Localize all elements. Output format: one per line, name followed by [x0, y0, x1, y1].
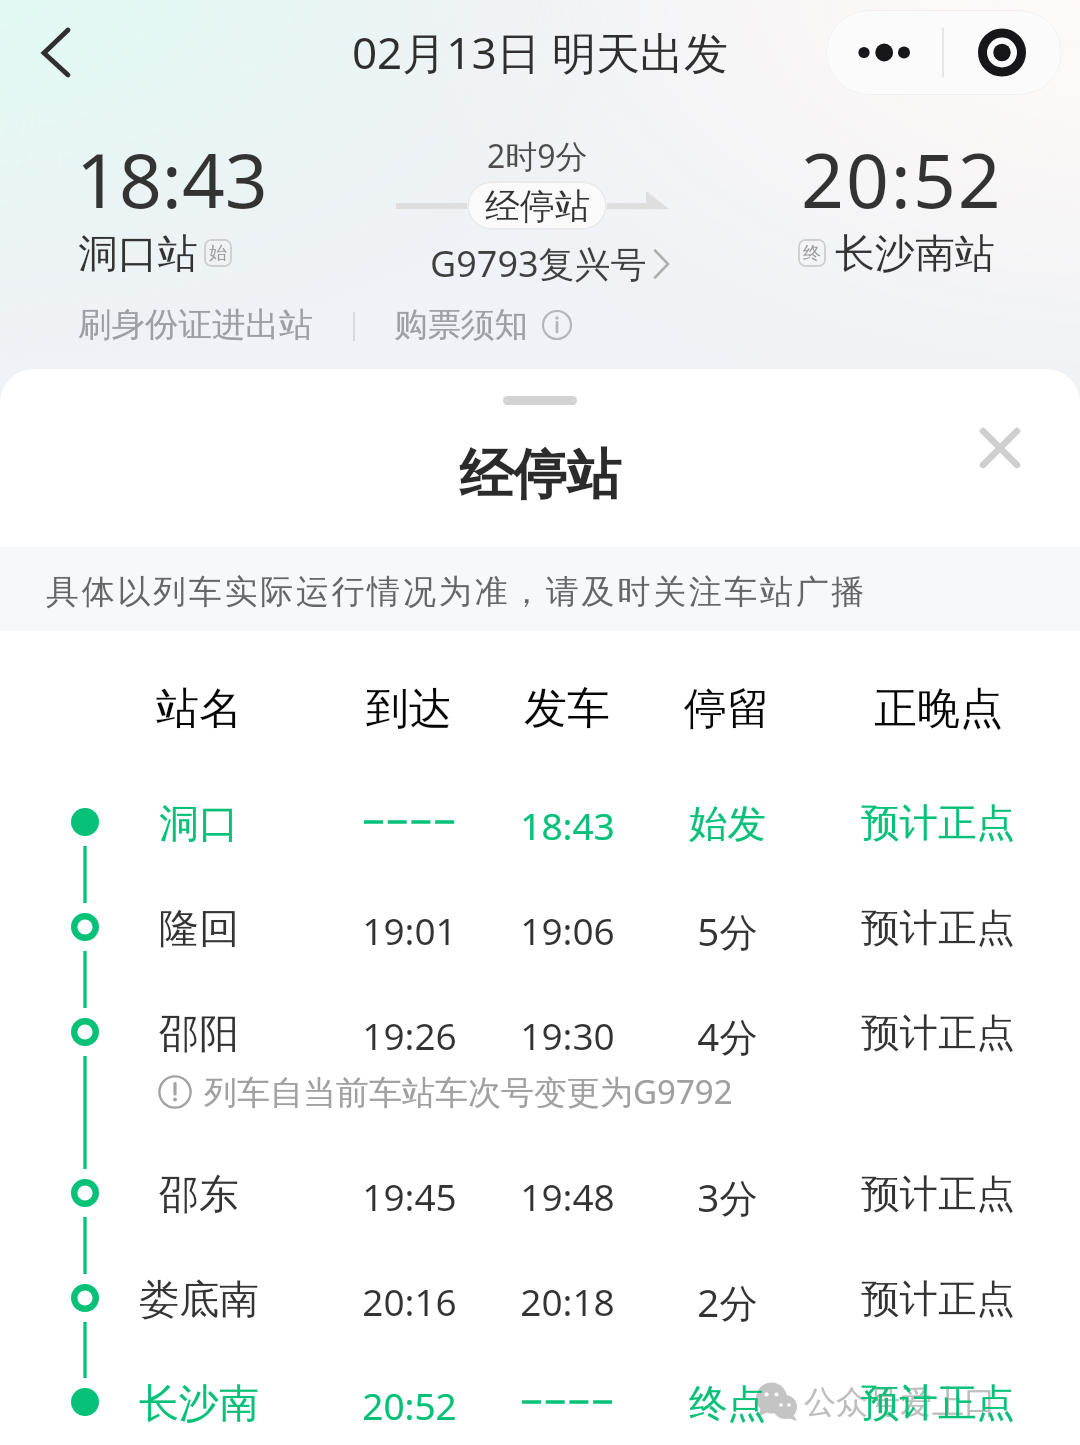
staticText: 02月13日 明天出发 — [0, 22, 1080, 82]
staticText: 公众号爱上口 — [804, 1382, 996, 1422]
staticText: 18:43 — [76, 128, 268, 230]
staticText: 刷身份证进出站 — [78, 304, 313, 346]
button[interactable]: 终 — [798, 228, 995, 278]
staticText: 20:16 — [362, 1276, 457, 1326]
staticText: G9793复兴号 — [430, 239, 647, 288]
staticText: 20:52 — [362, 1380, 457, 1430]
button[interactable]: 购票须知 — [394, 304, 572, 346]
button[interactable]: 洞口站 — [78, 228, 232, 278]
staticText: 预计正点 — [861, 1170, 1015, 1219]
staticText: 4分 — [697, 1010, 758, 1063]
staticText: 2分 — [697, 1276, 758, 1329]
staticText: 终点 — [689, 1380, 766, 1429]
button[interactable] — [0, 875, 1080, 979]
staticText: 终 — [803, 242, 821, 265]
staticText: 洞口 — [159, 798, 239, 848]
staticText: 邵东 — [159, 1169, 239, 1219]
staticText: 购票须知 — [394, 304, 528, 346]
staticText: 预计正点 — [861, 1009, 1015, 1058]
staticText: 始 — [209, 242, 227, 265]
button[interactable]: More — [826, 10, 943, 95]
staticText: 停留 — [684, 682, 770, 736]
button[interactable] — [0, 770, 1080, 874]
button[interactable]: Close mini program — [943, 10, 1062, 95]
staticText: 预计正点 — [861, 1275, 1015, 1324]
staticText: 站名 — [156, 682, 242, 736]
staticText: 娄底南 — [139, 1274, 259, 1324]
staticText: 19:06 — [520, 905, 615, 955]
button[interactable] — [0, 1350, 1080, 1445]
staticText: 19:48 — [520, 1171, 615, 1221]
staticText: 具体以列车实际运行情况为准，请及时关注车站广播 — [46, 571, 868, 613]
staticText: 预计正点 — [861, 799, 1015, 848]
staticText: 预计正点 — [861, 1379, 1015, 1428]
staticText: 长沙南 — [139, 1378, 259, 1428]
staticText: 18:43 — [520, 800, 615, 850]
button[interactable] — [0, 1246, 1080, 1350]
staticText: 20:52 — [801, 128, 1003, 230]
staticText: 列车自当前车站车次号变更为G9792 — [204, 1069, 733, 1114]
staticText: 经停站 — [485, 184, 590, 228]
staticText: 洞口站 — [78, 228, 198, 278]
staticText: 19:26 — [362, 1010, 457, 1060]
button[interactable]: Close — [966, 414, 1034, 482]
staticText: 19:30 — [520, 1010, 615, 1060]
staticText: 19:01 — [362, 905, 457, 955]
staticText: 预计正点 — [861, 904, 1015, 953]
staticText: 长沙南站 — [835, 228, 995, 278]
button[interactable]: 刷身份证进出站 — [78, 304, 313, 346]
button[interactable]: G9793复兴号 — [430, 239, 671, 288]
staticText: 19:45 — [362, 1171, 457, 1221]
staticText: 5分 — [697, 905, 758, 958]
staticText: 经停站 — [0, 441, 1080, 509]
staticText: 邵阳 — [159, 1008, 239, 1058]
staticText: 始发 — [689, 800, 766, 849]
staticText: 3分 — [697, 1171, 758, 1224]
button[interactable]: 经停站 — [467, 181, 607, 230]
staticText: 隆回 — [159, 903, 239, 953]
button[interactable] — [0, 980, 1080, 1084]
staticText: 发车 — [524, 682, 610, 736]
button[interactable] — [0, 1141, 1080, 1245]
staticText: 正晚点 — [874, 682, 1003, 736]
staticText: 2时9分 — [487, 134, 588, 178]
button[interactable]: Back — [14, 18, 84, 88]
staticText: 到达 — [366, 682, 452, 736]
staticText: 20:18 — [520, 1276, 615, 1326]
